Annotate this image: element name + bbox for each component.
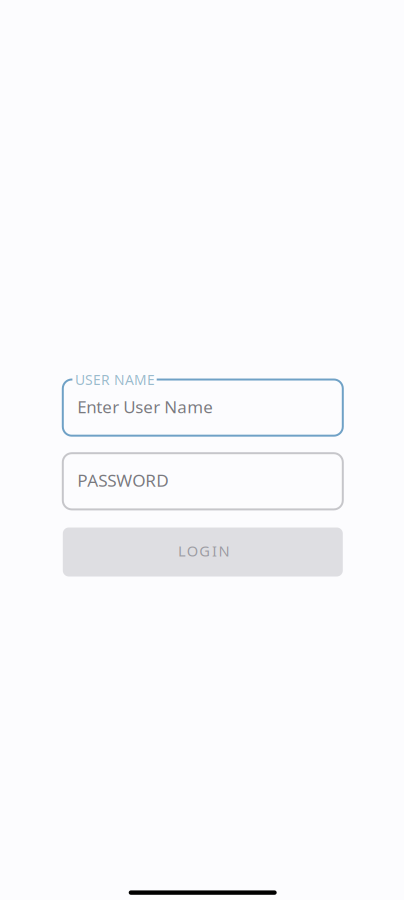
button[interactable]: PASSWORD [63, 453, 343, 509]
button[interactable]: Enter User Name [63, 379, 343, 436]
button[interactable]: LOGIN [63, 527, 343, 576]
staticText: LOGIN [178, 541, 229, 561]
staticText: Enter User Name [77, 396, 213, 418]
staticText: PASSWORD [77, 469, 169, 492]
staticText: USER NAME [75, 370, 155, 389]
